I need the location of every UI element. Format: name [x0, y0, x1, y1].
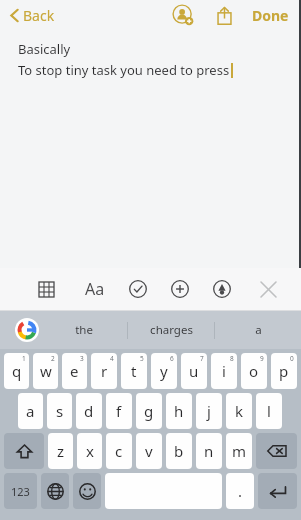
button[interactable]: Markup [205, 272, 239, 306]
staticText: h [174, 401, 184, 421]
button[interactable]: Done [248, 0, 293, 30]
button[interactable]: u [181, 353, 207, 389]
staticText: To stop tiny task you need to press [18, 61, 230, 79]
button[interactable]: r [91, 353, 117, 389]
button[interactable]: k [226, 393, 252, 429]
button[interactable]: p [271, 353, 297, 389]
staticText: n [204, 441, 214, 461]
button[interactable]: f [106, 393, 132, 429]
staticText: 9 [260, 354, 264, 363]
staticText: q [12, 361, 22, 381]
button[interactable]: c [106, 433, 132, 469]
button[interactable]: Share [210, 1, 238, 29]
staticText: g [144, 401, 154, 421]
button[interactable]: a [215, 311, 301, 349]
staticText: i [222, 361, 226, 381]
staticText: 5 [140, 354, 144, 363]
button[interactable]: Checklist [121, 272, 155, 306]
staticText: y [160, 361, 168, 381]
button[interactable]: l [256, 393, 282, 429]
button[interactable]: Google [14, 317, 40, 343]
staticText: t [131, 361, 137, 381]
button[interactable]: x [77, 433, 102, 469]
button[interactable]: charges [128, 311, 214, 349]
staticText: Done [252, 6, 289, 24]
staticText: Back [23, 6, 55, 25]
staticText: a [26, 401, 35, 421]
staticText: 1 [22, 354, 26, 363]
staticText: 0 [290, 354, 294, 363]
staticText: a [255, 322, 262, 338]
staticText: r [101, 361, 108, 381]
staticText: Aa [85, 278, 105, 300]
staticText: j [207, 401, 211, 421]
button[interactable]: Shift [4, 433, 44, 469]
staticText: c [115, 441, 123, 461]
staticText: w [40, 361, 52, 381]
button[interactable]: q [4, 353, 29, 389]
button[interactable]: Emoji [73, 473, 101, 509]
staticText: . [238, 481, 243, 501]
staticText: 123 [11, 484, 30, 499]
staticText: e [70, 361, 79, 381]
staticText: 7 [200, 354, 204, 363]
staticText: m [232, 441, 247, 461]
button[interactable]: i [211, 353, 237, 389]
button[interactable]: Add people [168, 0, 198, 30]
staticText: 2 [51, 354, 55, 363]
button[interactable]: m [226, 433, 252, 469]
staticText: o [249, 361, 259, 381]
button[interactable]: a [18, 393, 43, 429]
staticText: 3 [80, 354, 84, 363]
button[interactable]: z [48, 433, 73, 469]
button[interactable]: g [136, 393, 162, 429]
staticText: f [116, 401, 122, 421]
button[interactable]: h [166, 393, 192, 429]
staticText: Basically [18, 40, 71, 58]
staticText: b [174, 441, 184, 461]
button[interactable]: Table [29, 272, 63, 306]
button[interactable]: t [121, 353, 147, 389]
staticText: charges [150, 322, 193, 338]
staticText: 6 [170, 354, 174, 363]
staticText: k [235, 401, 244, 421]
staticText: d [84, 401, 94, 421]
button[interactable] [105, 473, 222, 509]
button[interactable]: b [166, 433, 192, 469]
button[interactable]: Text format [78, 272, 112, 306]
button[interactable]: w [33, 353, 58, 389]
staticText: 8 [230, 354, 234, 363]
button[interactable]: Enter [258, 473, 297, 509]
staticText: p [279, 361, 289, 381]
staticText: v [145, 441, 153, 461]
staticText: u [189, 361, 199, 381]
button[interactable]: Language [41, 473, 69, 509]
staticText: z [57, 441, 65, 461]
button[interactable]: Close keyboard [251, 272, 285, 306]
staticText: s [56, 401, 64, 421]
button[interactable]: 123 [4, 473, 37, 509]
button[interactable]: e [62, 353, 87, 389]
staticText: l [267, 401, 271, 421]
button[interactable]: Add attachment [163, 272, 197, 306]
staticText: the [75, 322, 93, 338]
button[interactable]: the [40, 311, 127, 349]
button[interactable]: n [196, 433, 222, 469]
button[interactable]: j [196, 393, 222, 429]
staticText: 4 [110, 354, 114, 363]
staticText: x [86, 441, 94, 461]
button[interactable]: v [136, 433, 162, 469]
button[interactable]: o [241, 353, 267, 389]
button[interactable]: s [47, 393, 72, 429]
button[interactable]: y [151, 353, 177, 389]
button[interactable]: Back [6, 2, 59, 29]
button[interactable]: d [76, 393, 102, 429]
button[interactable]: Backspace [256, 433, 297, 469]
button[interactable]: . [226, 473, 254, 509]
